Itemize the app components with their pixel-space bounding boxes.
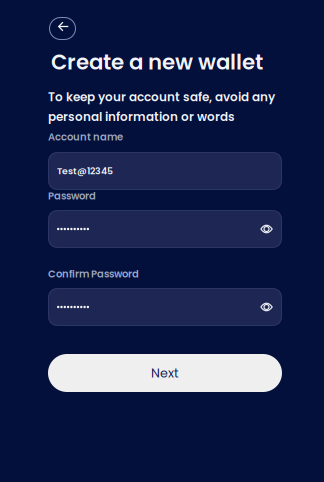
staticText: Confirm Password: [48, 267, 139, 281]
staticText: Password: [48, 189, 96, 203]
staticText: Account name: [48, 130, 123, 144]
staticText: Create a new wallet: [51, 47, 263, 77]
staticText: Test@12345: [57, 164, 113, 178]
staticText: Next: [151, 364, 179, 382]
staticText: To keep your account safe, avoid any per…: [48, 89, 275, 125]
button[interactable]: Back: [49, 17, 76, 40]
button[interactable]: Next: [48, 354, 282, 392]
